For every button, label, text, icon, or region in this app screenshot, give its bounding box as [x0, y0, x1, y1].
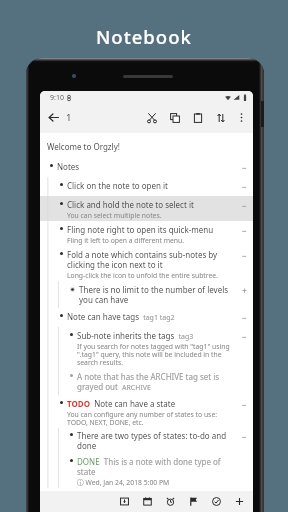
staticText: −	[242, 162, 247, 174]
button[interactable]: Note can have tags tag1 tag2	[40, 308, 253, 327]
staticText: TODO Note can have a state	[67, 398, 176, 409]
staticText: Notebook	[96, 24, 192, 49]
button[interactable]: New note	[228, 491, 251, 512]
staticText: −	[242, 181, 247, 193]
staticText: Sub-note inherits the tags tag3	[77, 330, 194, 341]
staticText: −	[242, 431, 247, 443]
button[interactable]: Click on the note to open it	[40, 177, 253, 196]
staticText: −	[242, 200, 247, 212]
staticText: There is no limit to the number of level…	[79, 284, 229, 305]
button[interactable]: Mark done	[205, 491, 228, 512]
staticText: −	[242, 225, 247, 237]
button[interactable]: Sub-note inherits the tags tag3	[40, 327, 253, 368]
button[interactable]: TODO Note can have a state	[40, 395, 253, 428]
staticText: Fling it left to open a different menu.	[67, 236, 185, 245]
button[interactable]: More options	[232, 103, 250, 132]
staticText: −	[242, 399, 247, 411]
staticText: 1	[66, 111, 72, 124]
staticText: There are two types of states: to-do and…	[77, 430, 227, 451]
button[interactable]: Cut	[140, 103, 163, 132]
staticText: Notes	[57, 161, 80, 172]
button[interactable]: There is no limit to the number of level…	[40, 281, 253, 308]
staticText: You can select multiple notes.	[67, 211, 162, 220]
button[interactable]: Deadline	[136, 491, 159, 512]
button[interactable]: Copy	[163, 103, 186, 132]
button[interactable]: Fling note right to open its quick-menu	[40, 221, 253, 246]
staticText: Welcome to Orgzly!	[47, 141, 120, 152]
staticText: −	[242, 312, 247, 324]
staticText: +	[242, 285, 247, 297]
staticText: −	[242, 331, 247, 343]
staticText: Fold a note which contains sub-notes by …	[67, 249, 218, 270]
staticText: Long-click the icon to unfold the entire…	[67, 271, 218, 280]
staticText: Click on the note to open it	[67, 180, 168, 191]
staticText: A note that has the ARCHIVE tag set is g…	[77, 371, 220, 392]
button[interactable]: Fold a note which contains sub-notes by …	[40, 246, 253, 281]
staticText: DONE This is a note with done type of st…	[77, 456, 221, 477]
staticText: Click and hold the note to select it	[67, 199, 194, 210]
button[interactable]: Move	[209, 103, 232, 132]
button[interactable]: Set state	[182, 491, 205, 512]
staticText: Fling note right to open its quick-menu	[67, 224, 214, 235]
button[interactable]: Welcome to Orgzly!	[40, 139, 253, 158]
staticText: 9:10	[50, 93, 64, 103]
button[interactable]: Schedule	[113, 491, 136, 512]
button[interactable]: Click and hold the note to select it	[40, 196, 253, 221]
staticText: If you search for notes tagged with "tag…	[77, 342, 230, 367]
button[interactable]: DONE This is a note with done type of st…	[40, 453, 253, 488]
staticText: −	[242, 250, 247, 262]
button[interactable]: There are two types of states: to-do and…	[40, 428, 253, 453]
staticText: Note can have tags tag1 tag2	[67, 311, 175, 322]
button[interactable]: A note that has the ARCHIVE tag set is g…	[40, 368, 253, 395]
staticText: ⓘ Wed, Jan 24, 2018 5:00 PM	[77, 478, 170, 487]
button[interactable]: Back	[40, 103, 66, 132]
button[interactable]: Notes	[40, 158, 253, 177]
button[interactable]: Set time	[159, 491, 182, 512]
staticText: You can configure any number of states t…	[67, 410, 218, 427]
button[interactable]: Paste	[186, 103, 209, 132]
